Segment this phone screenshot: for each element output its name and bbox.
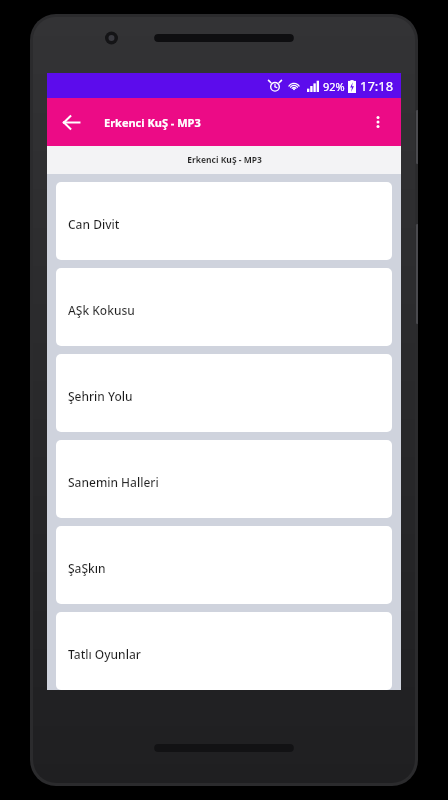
staticText: Sanemin Halleri [68,474,159,490]
button[interactable]: ŞaŞkın [56,526,392,604]
button[interactable]: AŞk Kokusu [56,268,392,346]
staticText: Şehrin Yolu [68,388,133,404]
button[interactable]: More options [361,105,395,139]
staticText: ŞaŞkın [68,560,106,576]
staticText: Erkenci KuŞ - MP3 [187,154,262,166]
staticText: Erkenci KuŞ - MP3 [104,115,201,130]
button[interactable]: Can Divit [56,182,392,260]
staticText: Tatlı Oyunlar [68,646,141,662]
staticText: 92% [323,79,345,94]
staticText: Can Divit [68,216,120,232]
staticText: 17:18 [360,77,394,95]
staticText: AŞk Kokusu [68,302,135,318]
button[interactable]: Şehrin Yolu [56,354,392,432]
button[interactable]: Tatlı Oyunlar [56,612,392,690]
button[interactable]: Back [53,104,89,140]
button[interactable]: Sanemin Halleri [56,440,392,518]
